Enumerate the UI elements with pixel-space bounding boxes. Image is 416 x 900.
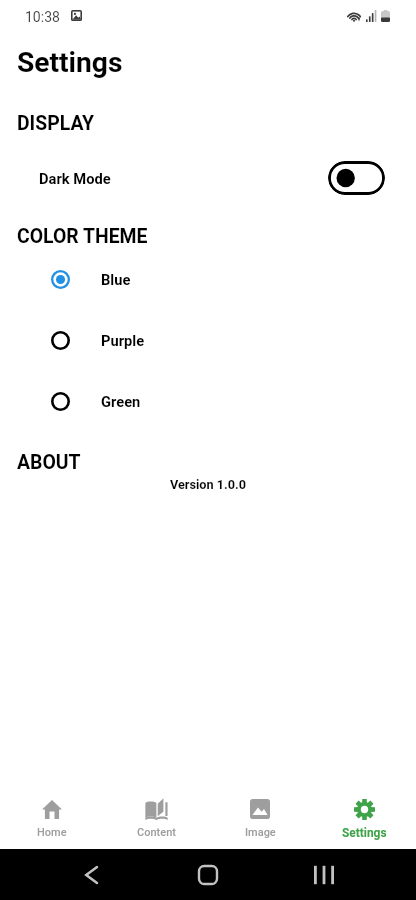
- staticText: Blue: [101, 271, 131, 288]
- staticText: 10:38: [25, 9, 60, 25]
- staticText: Settings: [17, 46, 123, 79]
- button[interactable]: Purple: [0, 318, 416, 362]
- staticText: Home: [37, 826, 67, 839]
- staticText: Dark Mode: [39, 170, 111, 187]
- button[interactable]: Green: [0, 379, 416, 423]
- staticText: DISPLAY: [17, 112, 95, 135]
- button[interactable]: Back: [72, 855, 112, 895]
- staticText: Purple: [101, 332, 145, 349]
- staticText: Settings: [342, 826, 387, 840]
- staticText: ABOUT: [17, 451, 81, 474]
- button[interactable]: Blue: [0, 257, 416, 301]
- button[interactable]: Dark Mode: [0, 156, 416, 200]
- button[interactable]: Settings: [312, 770, 416, 849]
- button[interactable]: Recent apps: [304, 855, 344, 895]
- button[interactable]: Content: [104, 770, 208, 849]
- staticText: Content: [137, 826, 176, 839]
- button[interactable]: Dark Mode toggle: [328, 161, 385, 195]
- button[interactable]: Home: [0, 770, 104, 849]
- staticText: Green: [101, 393, 141, 410]
- button[interactable]: Image: [208, 770, 312, 849]
- staticText: COLOR THEME: [17, 225, 148, 248]
- staticText: Version 1.0.0: [0, 477, 416, 492]
- button[interactable]: Home: [188, 855, 228, 895]
- staticText: Image: [245, 826, 276, 839]
